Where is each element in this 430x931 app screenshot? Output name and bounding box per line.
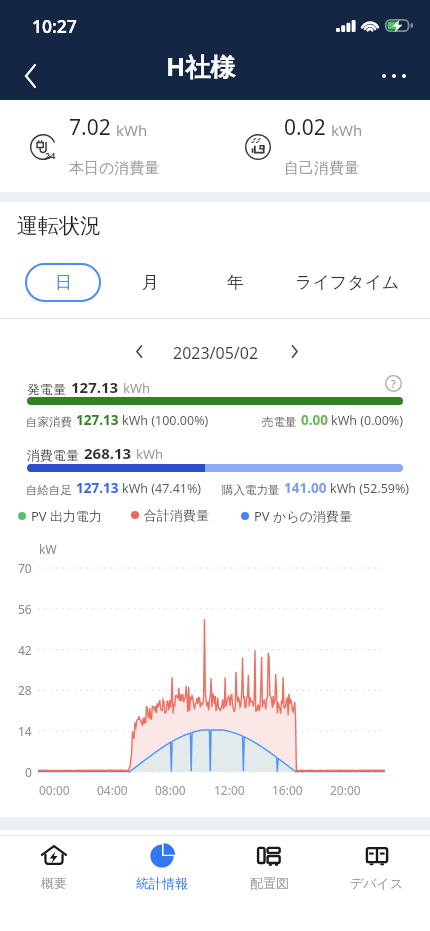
staticText: 年 [227,272,244,293]
button[interactable]: Help [385,375,402,392]
staticText: 購入電力量 [222,483,280,497]
staticText: 7.02 [69,113,111,142]
staticText: H社様 [166,49,236,83]
staticText: 70 [18,560,32,576]
staticText: 売電量 [262,415,297,429]
button[interactable]: 月 [120,263,180,302]
staticText: 56 [18,601,32,617]
staticText: PV 出力電力 [31,507,103,525]
button[interactable]: 日 [25,263,101,302]
staticText: 本日の消費量 [69,159,160,178]
staticText: 運転状況 [17,213,101,239]
staticText: 発電量 [27,381,66,397]
button[interactable]: 年 [205,263,265,302]
button[interactable]: 統計情報 [108,836,216,931]
staticText: PV からの消費量 [254,507,352,525]
staticText: 127.13 [76,411,119,429]
staticText: 268.13 [84,443,132,463]
staticText: 08:00 [155,782,186,798]
staticText: 0 [25,764,32,780]
button[interactable]: 配置図 [215,836,323,931]
staticText: ライフタイム [295,272,400,293]
staticText: 日 [55,272,72,293]
staticText: kWh (47.41%) [122,480,202,497]
staticText: kW [39,541,57,557]
staticText: 月 [142,272,159,293]
staticText: 20:00 [330,782,361,798]
staticText: 自給自足 [26,483,72,497]
staticText: 28 [18,682,32,698]
staticText: 合計消費量 [144,507,209,523]
staticText: 127.13 [71,377,119,397]
staticText: 12:00 [214,782,245,798]
staticText: 127.13 [76,479,119,497]
staticText: 00:00 [39,782,70,798]
staticText: kWh (0.00%) [331,412,403,429]
staticText: kWh (52.59%) [330,480,410,497]
staticText: 24 [45,149,56,161]
staticText: kWh [116,120,148,140]
staticText: 141.00 [284,479,327,497]
button[interactable]: Previous day [124,336,154,366]
staticText: 自己消費量 [284,159,359,178]
staticText: 消費電量 [27,447,79,463]
button[interactable]: ライフタイム [282,263,412,302]
staticText: 2023/05/02 [173,342,259,364]
staticText: 自家消費 [26,415,72,429]
staticText: 04:00 [97,782,128,798]
button[interactable]: デバイス [323,836,430,931]
staticText: kWh [123,379,151,397]
button[interactable]: Back [10,56,50,96]
staticText: 14 [18,723,32,739]
staticText: 概要 [41,875,67,891]
staticText: ? [391,376,396,391]
staticText: 統計情報 [136,875,188,891]
staticText: kWh [136,445,164,463]
staticText: デバイス [350,875,404,891]
staticText: 配置図 [250,875,289,891]
staticText: kWh [331,120,363,140]
button[interactable]: More options [372,54,416,98]
staticText: kWh (100.00%) [122,412,209,429]
button[interactable]: 概要 [0,836,108,931]
staticText: 0.02 [284,113,326,142]
staticText: 42 [18,642,32,658]
staticText: 10:27 [32,14,77,38]
staticText: 16:00 [272,782,303,798]
button[interactable]: Next day [279,336,309,366]
staticText: 0.00 [301,411,328,429]
